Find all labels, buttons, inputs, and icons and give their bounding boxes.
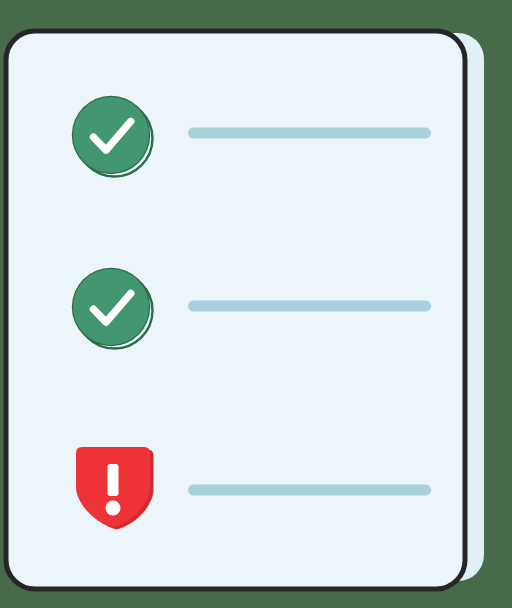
button[interactable]: Security checklist illustration [0,0,512,608]
